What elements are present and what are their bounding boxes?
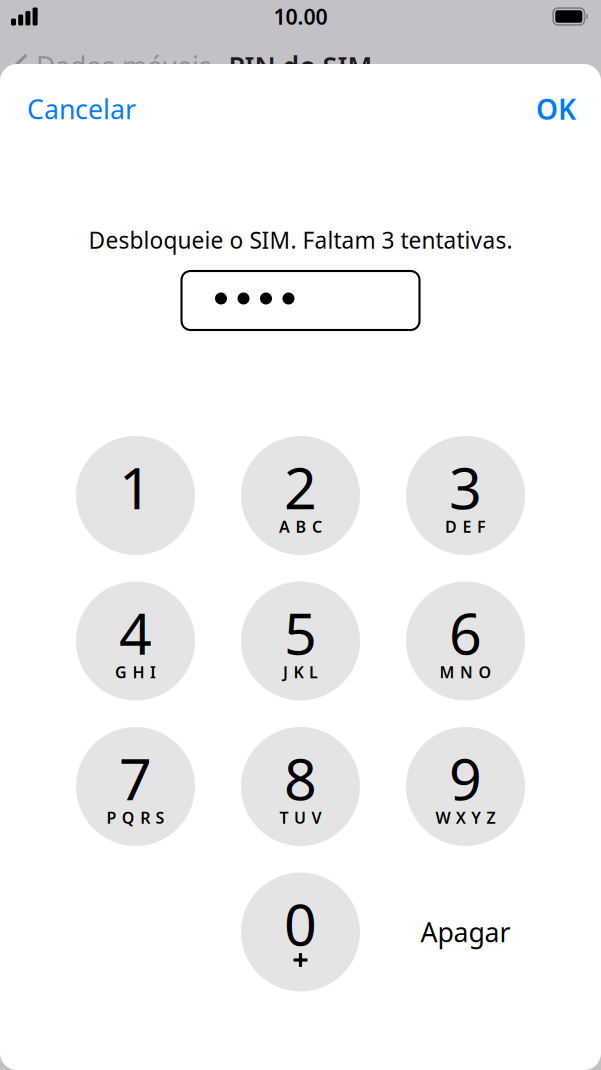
staticText: Dados móveis: [36, 48, 212, 84]
staticText: E: [462, 516, 471, 537]
button[interactable]: 9 WXYZ: [406, 727, 525, 846]
staticText: O: [478, 661, 491, 683]
staticText: 10.00: [273, 2, 327, 31]
staticText: 2: [284, 449, 317, 525]
staticText: T: [280, 807, 289, 828]
button[interactable]: 6 MNO: [406, 581, 525, 700]
staticText: A: [279, 516, 290, 537]
staticText: Z: [487, 807, 496, 828]
staticText: 5: [284, 594, 317, 670]
staticText: J: [283, 661, 288, 683]
button[interactable]: 5 JKL: [241, 581, 360, 700]
staticText: M: [440, 661, 455, 683]
staticText: 0: [284, 885, 317, 961]
staticText: 1: [119, 449, 152, 525]
staticText: G: [115, 661, 127, 683]
button[interactable]: 8 TUV: [241, 727, 360, 846]
button[interactable]: Cancelar: [27, 92, 136, 126]
button[interactable]: Apagar: [406, 872, 525, 991]
staticText: Y: [471, 807, 481, 828]
staticText: 3: [449, 449, 482, 525]
staticText: PIN do SIM: [228, 48, 372, 84]
button[interactable]: 1: [76, 436, 195, 555]
staticText: 8: [284, 740, 317, 816]
staticText: D: [445, 516, 457, 537]
staticText: 9: [449, 740, 482, 816]
staticText: F: [477, 516, 486, 537]
staticText: K: [293, 661, 303, 683]
staticText: R: [140, 807, 150, 828]
staticText: I: [150, 661, 156, 683]
button[interactable]: 3 DEF: [406, 436, 525, 555]
staticText: C: [312, 516, 322, 537]
staticText: W: [435, 807, 450, 828]
staticText: Desbloqueie o SIM. Faltam 3 tentativas.: [88, 225, 512, 255]
button[interactable]: 2 ABC: [241, 436, 360, 555]
staticText: S: [156, 807, 165, 828]
staticText: U: [294, 807, 306, 828]
staticText: H: [132, 661, 144, 683]
staticText: P: [106, 807, 116, 828]
staticText: 4: [119, 594, 152, 670]
staticText: B: [295, 516, 306, 537]
button[interactable]: OK: [536, 92, 576, 126]
staticText: Cancelar: [27, 91, 136, 127]
staticText: Q: [122, 807, 135, 828]
staticText: OK: [536, 90, 576, 128]
staticText: 7: [119, 740, 152, 816]
staticText: V: [311, 807, 321, 828]
staticText: 6: [449, 594, 482, 670]
button[interactable]: 7 PQRS: [76, 727, 195, 846]
staticText: X: [456, 807, 466, 828]
staticText: N: [460, 661, 473, 683]
staticText: Apagar: [420, 914, 510, 950]
button[interactable]: 0: [241, 872, 360, 991]
staticText: L: [309, 661, 318, 683]
button[interactable]: 4 GHI: [76, 581, 195, 700]
